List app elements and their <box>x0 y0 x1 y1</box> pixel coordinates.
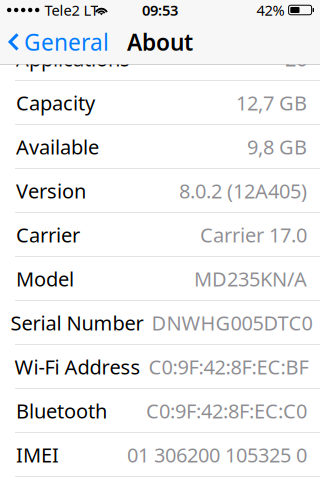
staticText: IMEI <box>16 441 59 468</box>
staticText: Serial Number <box>10 309 143 336</box>
button[interactable]: Capacity <box>0 81 320 124</box>
button[interactable]: Wi-Fi Address <box>0 345 320 388</box>
staticText: Version <box>16 177 86 204</box>
button[interactable]: Applications <box>0 37 320 80</box>
staticText: 09:53 <box>142 0 178 20</box>
staticText: Wi-Fi Address <box>14 353 140 380</box>
button[interactable]: IMEI <box>0 433 320 476</box>
staticText: C0:9F:42:8F:EC:C0 <box>146 397 307 424</box>
button[interactable]: Bluetooth <box>0 389 320 432</box>
staticText: General <box>24 27 109 57</box>
button[interactable]: Carrier <box>0 213 320 256</box>
staticText: MD235KN/A <box>194 265 307 292</box>
staticText: 42% <box>257 0 285 20</box>
staticText: Applications <box>16 45 130 72</box>
staticText: 12,7 GB <box>236 89 307 116</box>
button[interactable]: Serial Number <box>0 301 320 344</box>
staticText: 26 <box>285 45 307 72</box>
button[interactable]: Version <box>0 169 320 212</box>
staticText: C0:9F:42:8F:EC:BF <box>148 353 308 380</box>
staticText: Carrier 17.0 <box>200 221 307 248</box>
button[interactable]: Available <box>0 125 320 168</box>
staticText: DNWHG005DTC0 <box>151 309 312 336</box>
staticText: 9,8 GB <box>247 133 307 160</box>
button[interactable]: General <box>0 20 117 64</box>
staticText: About <box>127 27 193 57</box>
staticText: Model <box>16 265 74 292</box>
staticText: Carrier <box>16 221 80 248</box>
staticText: Available <box>16 133 99 160</box>
staticText: Tele2 LT <box>44 0 98 20</box>
staticText: Bluetooth <box>16 397 107 424</box>
staticText: 8.0.2 (12A405) <box>179 177 307 204</box>
staticText: 01 306200 105325 0 <box>127 441 307 468</box>
button[interactable]: Model <box>0 257 320 300</box>
staticText: Capacity <box>16 89 95 116</box>
